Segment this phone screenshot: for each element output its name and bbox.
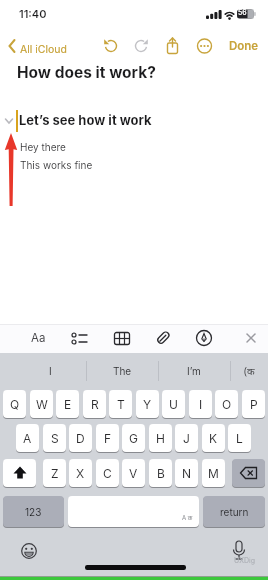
staticText: V [129, 466, 138, 481]
staticText: UXDig [234, 556, 256, 564]
button[interactable]: (क [230, 358, 268, 384]
staticText: F [104, 431, 112, 446]
button[interactable] [230, 539, 248, 563]
button[interactable] [68, 326, 92, 350]
staticText: I [199, 397, 203, 412]
button[interactable]: X [69, 459, 92, 487]
staticText: Y [143, 397, 152, 412]
button[interactable]: P [242, 390, 265, 418]
button[interactable]: G [122, 424, 145, 452]
staticText: G [129, 431, 138, 446]
staticText: I’m [187, 365, 201, 377]
staticText: S [51, 431, 59, 446]
staticText: return [220, 506, 249, 518]
staticText: U [169, 397, 178, 412]
button[interactable] [192, 326, 216, 350]
staticText: Q [10, 397, 20, 412]
staticText: Aa [31, 331, 46, 345]
button[interactable]: H [149, 424, 172, 452]
staticText: M [208, 466, 219, 481]
button[interactable]: D [69, 424, 92, 452]
button[interactable]: E [56, 390, 79, 418]
button[interactable]: U [162, 390, 185, 418]
button[interactable]: I [14, 358, 86, 384]
staticText: Z [51, 466, 59, 481]
button[interactable]: return [203, 496, 265, 527]
button[interactable]: Z [43, 459, 66, 487]
button[interactable]: Y [136, 390, 159, 418]
button[interactable]: B [149, 459, 172, 487]
button[interactable]: The [86, 358, 158, 384]
button[interactable]: A [16, 424, 39, 452]
staticText: A क [182, 514, 193, 522]
button[interactable]: J [175, 424, 198, 452]
button[interactable] [3, 459, 36, 487]
button[interactable] [232, 459, 265, 487]
button[interactable] [20, 542, 38, 560]
staticText: 56 [238, 8, 247, 16]
staticText: C [103, 466, 112, 481]
button[interactable]: Q [3, 390, 26, 418]
button[interactable]: V [122, 459, 145, 487]
staticText: How does it work? [17, 63, 156, 82]
button[interactable] [196, 37, 213, 55]
staticText: The [113, 365, 132, 377]
button[interactable]: W [30, 390, 53, 418]
button[interactable]: S [43, 424, 66, 452]
button[interactable] [151, 326, 175, 350]
button[interactable]: L [228, 424, 251, 452]
staticText: I [49, 365, 52, 377]
staticText: K [209, 431, 218, 446]
button[interactable]: I’m [158, 358, 230, 384]
button[interactable] [240, 326, 262, 350]
button[interactable] [164, 36, 181, 56]
button[interactable] [110, 326, 134, 350]
button[interactable]: M [202, 459, 225, 487]
button[interactable]: O [215, 390, 238, 418]
staticText: Hey there [20, 141, 66, 153]
button[interactable]: R [83, 390, 106, 418]
staticText: E [64, 397, 72, 412]
staticText: 123 [25, 506, 42, 518]
staticText: D [76, 431, 85, 446]
button[interactable] [68, 496, 199, 527]
staticText: All iCloud [20, 43, 67, 56]
staticText: W [36, 397, 48, 412]
staticText: (क [244, 364, 255, 378]
button[interactable] [103, 38, 119, 54]
button[interactable]: F [96, 424, 119, 452]
staticText: H [156, 431, 165, 446]
button[interactable]: N [175, 459, 198, 487]
staticText: P [250, 397, 258, 412]
button[interactable]: I [189, 390, 212, 418]
staticText: 11:40 [19, 7, 47, 20]
staticText: O [222, 397, 232, 412]
staticText: T [117, 397, 125, 412]
staticText: This works fine [20, 159, 93, 171]
staticText: A [23, 431, 32, 446]
button[interactable]: Aa [24, 326, 52, 350]
staticText: L [236, 431, 243, 446]
button[interactable] [133, 38, 149, 54]
button[interactable]: C [96, 459, 119, 487]
staticText: Let’s see how it work [19, 112, 152, 128]
staticText: B [157, 466, 165, 481]
staticText: J [183, 431, 190, 446]
staticText: Done [229, 39, 259, 53]
button[interactable]: All iCloud [4, 36, 66, 56]
staticText: N [182, 466, 192, 481]
button[interactable]: T [109, 390, 132, 418]
staticText: X [76, 466, 85, 481]
staticText: R [91, 397, 99, 412]
button[interactable]: Done [224, 36, 264, 56]
button[interactable]: 123 [3, 496, 64, 527]
button[interactable]: K [202, 424, 225, 452]
